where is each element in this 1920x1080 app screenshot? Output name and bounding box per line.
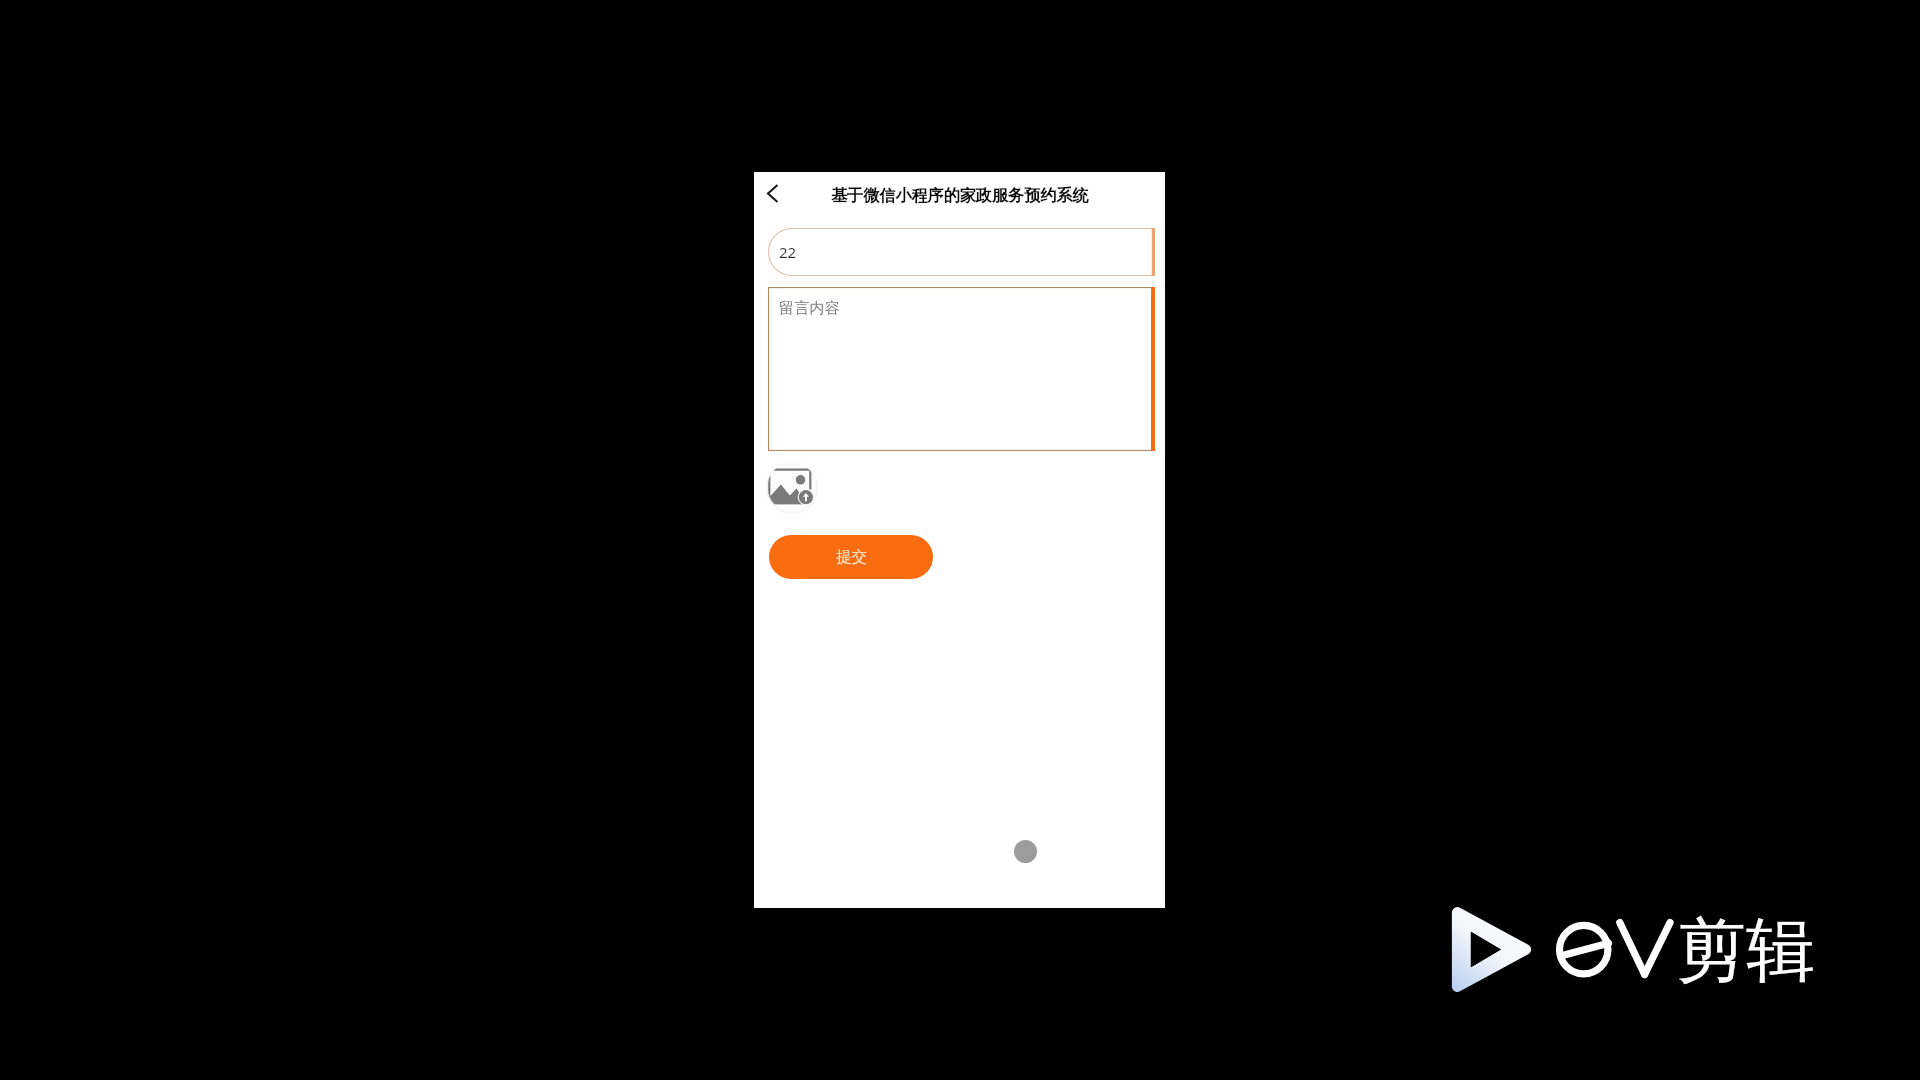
- staticText: 22: [779, 242, 797, 262]
- staticText: 基于微信小程序的家政服务预约系统: [831, 185, 1089, 205]
- button[interactable]: Back: [756, 174, 798, 214]
- staticText: 剪辑: [1677, 908, 1815, 995]
- button[interactable]: 提交: [769, 535, 933, 579]
- button[interactable]: 留言内容: [768, 287, 1155, 451]
- staticText: 留言内容: [779, 298, 841, 317]
- staticText: 提交: [836, 547, 867, 567]
- button[interactable]: 22: [768, 228, 1155, 276]
- button[interactable]: Upload image: [765, 458, 817, 510]
